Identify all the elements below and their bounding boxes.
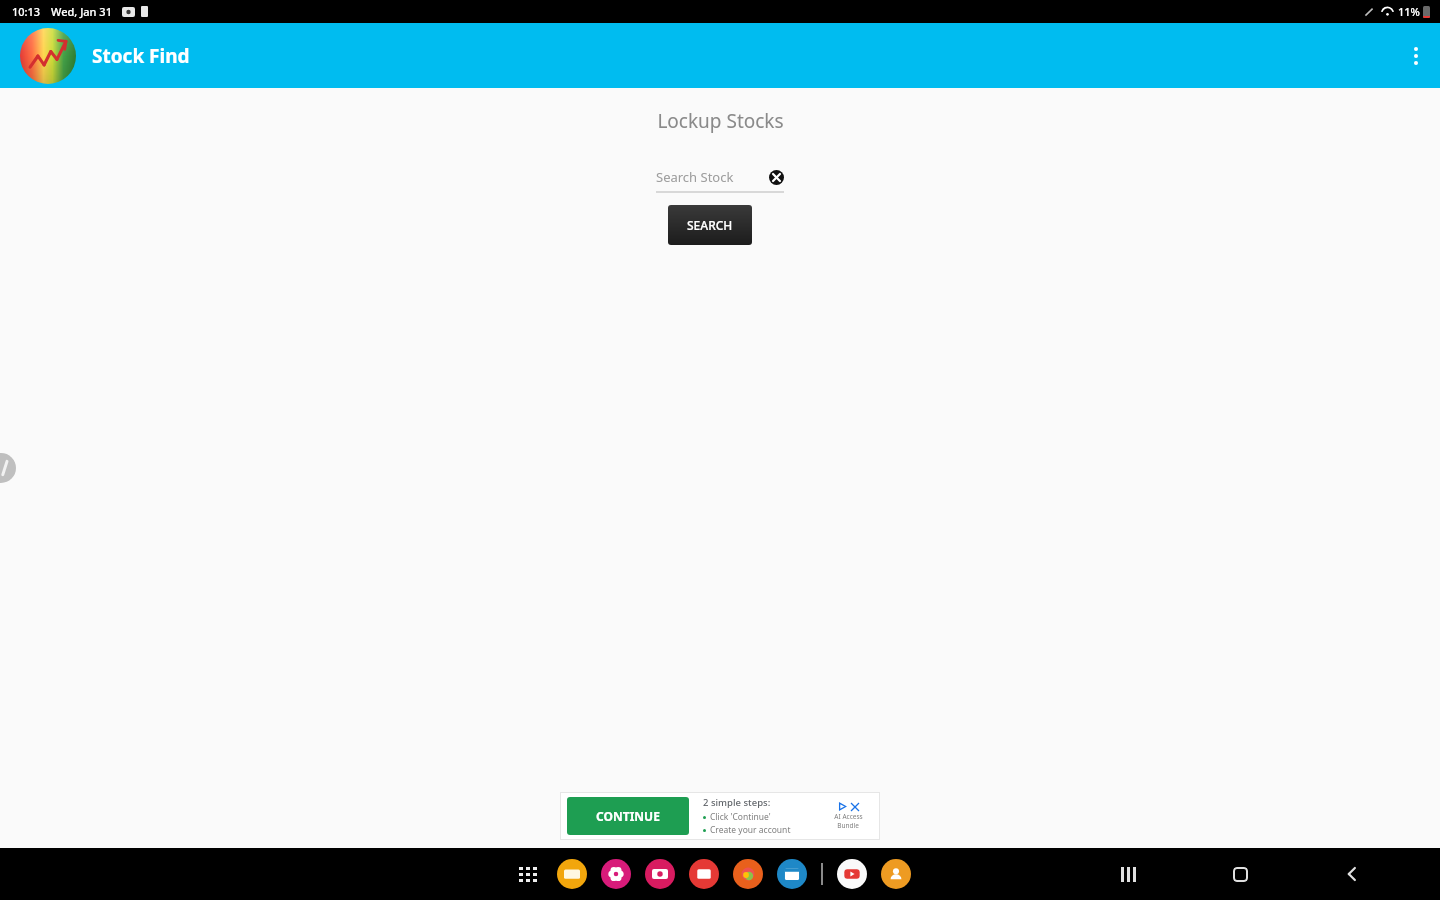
button[interactable]: Back (1332, 854, 1372, 894)
staticText: 10:13 (12, 4, 41, 19)
button[interactable]: Calendar (777, 859, 807, 889)
staticText: Create your account (710, 824, 791, 836)
staticText: Stock Find (92, 43, 190, 69)
button[interactable]: CONTINUE (567, 797, 689, 835)
button[interactable]: Camera (645, 859, 675, 889)
staticText: AI Access (834, 812, 863, 821)
button[interactable]: More options (1392, 32, 1440, 80)
staticText: Bundle (837, 821, 859, 830)
button[interactable]: Photos (733, 859, 763, 889)
button[interactable]: Gallery flower (601, 859, 631, 889)
button[interactable]: CONTINUE (560, 792, 880, 840)
staticText: Click 'Continue' (710, 811, 771, 823)
button[interactable]: Apps (513, 859, 543, 889)
staticText: Lockup Stocks (657, 108, 784, 134)
staticText: Wed, Jan 31 (51, 4, 112, 19)
staticText: 2 simple steps: (703, 796, 771, 809)
button[interactable]: Recent apps (1108, 854, 1148, 894)
button[interactable]: Home (1220, 854, 1260, 894)
button[interactable]: Search Stock (656, 168, 784, 193)
staticText: SEARCH (687, 217, 733, 233)
button[interactable]: Edge panel handle (0, 453, 16, 483)
button[interactable]: Contacts (881, 859, 911, 889)
staticText: Search Stock (656, 168, 769, 186)
button[interactable]: My Files (557, 859, 587, 889)
staticText: CONTINUE (596, 808, 660, 824)
staticText: 11% (1398, 4, 1420, 19)
button[interactable]: Clear text (769, 170, 784, 185)
button[interactable]: SEARCH (668, 205, 752, 245)
button[interactable]: YouTube (837, 859, 867, 889)
button[interactable]: Notes (689, 859, 719, 889)
